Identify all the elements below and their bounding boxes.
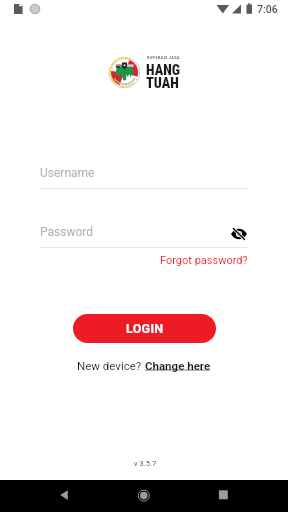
staticText: 7:06 [257, 3, 278, 15]
button[interactable]: Show password [229, 224, 249, 244]
staticText: LOGIN [126, 321, 164, 336]
button[interactable]: Password [40, 219, 248, 248]
button[interactable]: Home [128, 480, 160, 512]
button[interactable]: Forgot password? [160, 254, 248, 267]
button[interactable]: LOGIN [73, 314, 216, 343]
staticText: Password [40, 225, 94, 239]
staticText: TUAH [146, 75, 179, 91]
staticText: v 3.5.7 [134, 459, 157, 468]
button[interactable]: Back [48, 480, 80, 512]
button[interactable]: Change here [145, 359, 211, 372]
button[interactable]: Recent apps [208, 480, 240, 512]
staticText: KOPERASI JASA [147, 55, 180, 60]
staticText: New device? [77, 359, 145, 372]
staticText: Username [40, 166, 95, 180]
staticText: HANG [146, 62, 180, 78]
button[interactable]: Username [40, 160, 248, 189]
staticText: Forgot password? [160, 254, 248, 267]
